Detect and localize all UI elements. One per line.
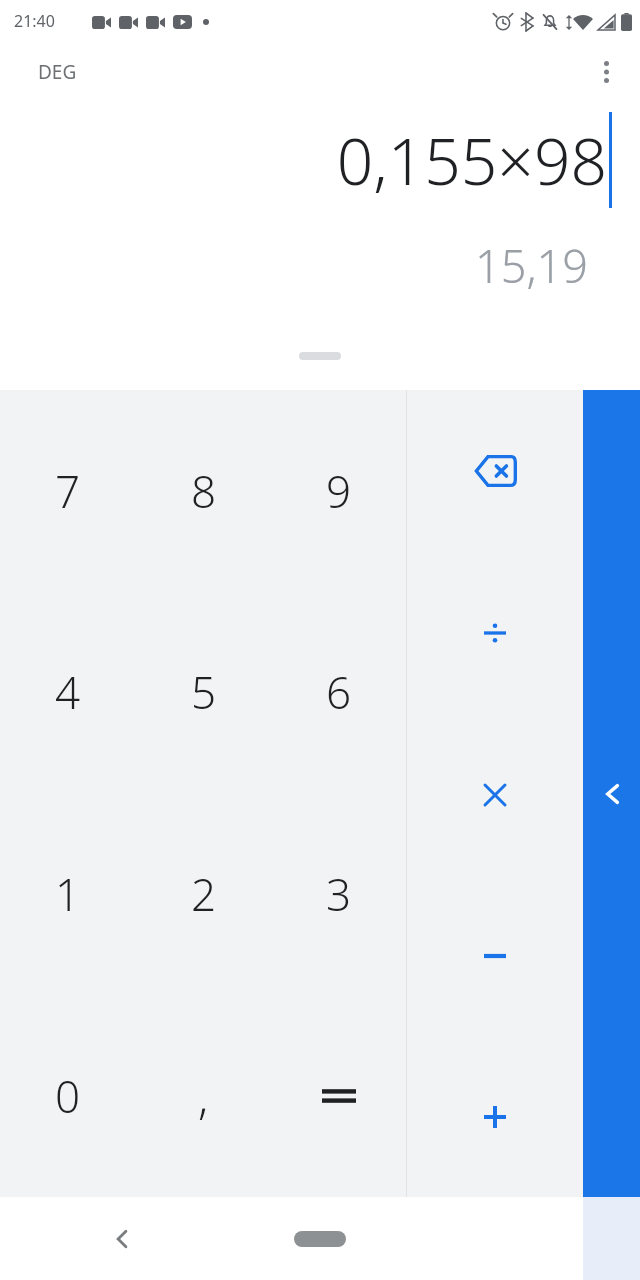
button[interactable] bbox=[271, 995, 406, 1197]
button[interactable]: Multiply bbox=[407, 714, 583, 875]
staticText: 2 bbox=[191, 864, 217, 924]
staticText: 15,19 bbox=[475, 235, 588, 296]
button[interactable]: Home bbox=[294, 1231, 346, 1247]
button[interactable]: Divide bbox=[407, 552, 583, 714]
button[interactable]: 0 bbox=[0, 995, 136, 1197]
staticText: DEG bbox=[38, 59, 77, 85]
staticText: 0 bbox=[55, 1066, 81, 1126]
staticText: 5 bbox=[191, 662, 217, 722]
staticText: 3 bbox=[326, 864, 352, 924]
button[interactable]: Back bbox=[98, 1215, 146, 1263]
button[interactable]: Minus bbox=[407, 875, 583, 1036]
button[interactable]: 4 bbox=[0, 591, 136, 793]
button[interactable]: Show advanced pad bbox=[583, 390, 640, 1197]
staticText: 7 bbox=[55, 461, 81, 521]
button[interactable]: , bbox=[136, 995, 271, 1197]
button[interactable]: 3 bbox=[271, 793, 406, 995]
button[interactable]: DEG bbox=[22, 53, 93, 91]
button[interactable]: 5 bbox=[136, 591, 271, 793]
button[interactable]: Plus bbox=[407, 1036, 583, 1197]
button[interactable]: 2 bbox=[136, 793, 271, 995]
button[interactable]: 1 bbox=[0, 793, 136, 995]
staticText: 0,155×98 bbox=[336, 117, 607, 204]
button[interactable]: 6 bbox=[271, 591, 406, 793]
staticText: 6 bbox=[326, 662, 352, 722]
button[interactable]: Backspace bbox=[407, 390, 583, 552]
button[interactable]: 9 bbox=[271, 390, 406, 591]
button[interactable]: 7 bbox=[0, 390, 136, 591]
button[interactable]: Expand history bbox=[299, 352, 341, 360]
button[interactable]: More options bbox=[582, 48, 630, 96]
button[interactable]: 8 bbox=[136, 390, 271, 591]
staticText: , bbox=[198, 1065, 209, 1128]
staticText: 9 bbox=[326, 461, 352, 521]
staticText: 1 bbox=[55, 864, 81, 924]
staticText: 4 bbox=[55, 662, 81, 722]
staticText: 21:40 bbox=[14, 10, 55, 32]
staticText: 8 bbox=[191, 461, 217, 521]
